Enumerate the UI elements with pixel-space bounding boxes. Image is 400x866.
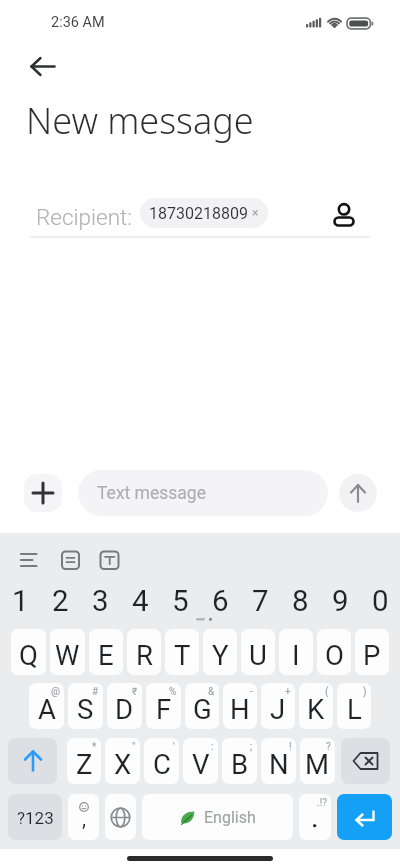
button[interactable]: ): [337, 683, 371, 729]
button[interactable]: [341, 738, 390, 784]
button[interactable]: ₹: [107, 683, 142, 729]
staticText: T: [174, 639, 191, 671]
staticText: 2: [52, 584, 69, 619]
button[interactable]: ,: [68, 794, 99, 840]
button[interactable]: W: [50, 629, 85, 675]
button[interactable]: ': [144, 738, 179, 784]
staticText: O: [325, 639, 344, 671]
staticText: M: [305, 748, 330, 780]
button[interactable]: 0: [360, 579, 400, 624]
button[interactable]: [330, 196, 364, 232]
button[interactable]: 5: [160, 579, 200, 624]
button[interactable]: P: [355, 629, 389, 675]
button[interactable]: ?123: [8, 794, 62, 840]
staticText: 0: [372, 584, 389, 619]
staticText: F: [156, 693, 172, 725]
staticText: 18730218809: [149, 204, 248, 223]
staticText: V: [192, 748, 210, 780]
staticText: A: [38, 693, 56, 725]
staticText: Z: [76, 748, 93, 780]
staticText: H: [230, 693, 250, 725]
staticText: G: [193, 693, 212, 725]
button[interactable]: Text message: [78, 470, 328, 516]
button[interactable]: [24, 474, 62, 512]
button[interactable]: 9: [320, 579, 360, 624]
staticText: %: [169, 686, 177, 698]
staticText: ₹: [132, 686, 138, 698]
button[interactable]: #: [68, 683, 103, 729]
button[interactable]: ?: [300, 738, 335, 784]
button[interactable]: 3: [80, 579, 120, 624]
staticText: ': [173, 741, 175, 753]
staticText: C: [153, 748, 171, 780]
button[interactable]: 18730218809: [140, 198, 268, 228]
staticText: P: [363, 639, 381, 671]
button[interactable]: O: [317, 629, 351, 675]
staticText: -: [250, 686, 253, 698]
staticText: ,: [82, 807, 86, 830]
staticText: Y: [212, 639, 229, 671]
button[interactable]: &: [185, 683, 219, 729]
button[interactable]: !: [261, 738, 296, 784]
staticText: 4: [132, 584, 149, 619]
button[interactable]: %: [146, 683, 181, 729]
button[interactable]: .!?: [299, 794, 331, 840]
staticText: ?123: [17, 808, 54, 828]
staticText: L: [347, 693, 362, 725]
staticText: I: [292, 639, 300, 671]
staticText: *: [92, 741, 97, 753]
button[interactable]: @: [29, 683, 64, 729]
staticText: Text message: [97, 483, 206, 504]
button[interactable]: English: [142, 794, 293, 840]
button[interactable]: I: [279, 629, 313, 675]
button[interactable]: :: [183, 738, 218, 784]
staticText: R: [136, 639, 153, 671]
button[interactable]: [8, 539, 128, 571]
button[interactable]: [339, 474, 377, 512]
staticText: ): [363, 686, 367, 698]
staticText: W: [55, 639, 80, 671]
button[interactable]: -: [223, 683, 257, 729]
staticText: (: [325, 686, 329, 698]
staticText: E: [98, 639, 114, 671]
button[interactable]: Y: [203, 629, 237, 675]
button[interactable]: 1: [0, 579, 40, 624]
staticText: K: [307, 693, 325, 725]
button[interactable]: 4: [120, 579, 160, 624]
button[interactable]: [105, 794, 136, 840]
staticText: ": [132, 741, 136, 753]
button[interactable]: ": [105, 738, 140, 784]
button[interactable]: R: [127, 629, 161, 675]
staticText: 7: [252, 584, 269, 619]
button[interactable]: [20, 46, 64, 86]
button[interactable]: 8: [280, 579, 320, 624]
staticText: 6: [212, 584, 229, 619]
staticText: English: [204, 808, 256, 827]
staticText: 8: [292, 584, 309, 619]
staticText: 1: [12, 584, 29, 619]
button[interactable]: U: [241, 629, 275, 675]
button[interactable]: 6: [200, 579, 240, 624]
staticText: ;: [250, 741, 253, 753]
staticText: New message: [26, 96, 254, 145]
staticText: .!?: [317, 797, 327, 809]
button[interactable]: T: [165, 629, 199, 675]
button[interactable]: 2: [40, 579, 80, 624]
button[interactable]: Q: [11, 629, 46, 675]
staticText: D: [115, 693, 134, 725]
button[interactable]: E: [89, 629, 123, 675]
button[interactable]: *: [67, 738, 101, 784]
staticText: 9: [332, 584, 349, 619]
staticText: Recipient:: [36, 204, 133, 230]
staticText: :: [211, 741, 214, 753]
button[interactable]: [8, 738, 57, 784]
staticText: ?: [326, 741, 331, 753]
button[interactable]: (: [299, 683, 333, 729]
staticText: 2:36 AM: [51, 14, 105, 31]
staticText: +: [285, 686, 291, 698]
button[interactable]: ;: [222, 738, 257, 784]
staticText: ×: [252, 206, 259, 220]
button[interactable]: +: [261, 683, 295, 729]
button[interactable]: [337, 794, 392, 840]
button[interactable]: 7: [240, 579, 280, 624]
